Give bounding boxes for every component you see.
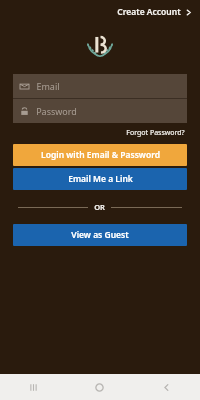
- button[interactable]: Password: [13, 99, 187, 123]
- staticText: Email: [36, 80, 60, 92]
- staticText: Email Me a Link: [68, 173, 133, 185]
- button[interactable]: Back: [133, 374, 200, 400]
- button[interactable]: Email Me a Link: [13, 168, 187, 190]
- button[interactable]: View as Guest: [13, 224, 187, 246]
- button[interactable]: Recent apps: [0, 374, 66, 400]
- button[interactable]: Home: [66, 374, 133, 400]
- staticText: View as Guest: [71, 229, 129, 241]
- staticText: Create Account: [117, 6, 181, 18]
- staticText: OR: [94, 202, 105, 212]
- staticText: Forgot Password?: [126, 128, 185, 138]
- button[interactable]: Email: [13, 74, 187, 98]
- staticText: Login with Email & Password: [41, 149, 160, 161]
- staticText: Password: [36, 105, 77, 117]
- button[interactable]: Login with Email & Password: [13, 144, 187, 166]
- button[interactable]: Forgot Password?: [124, 126, 187, 140]
- button[interactable]: Create Account: [109, 2, 200, 22]
